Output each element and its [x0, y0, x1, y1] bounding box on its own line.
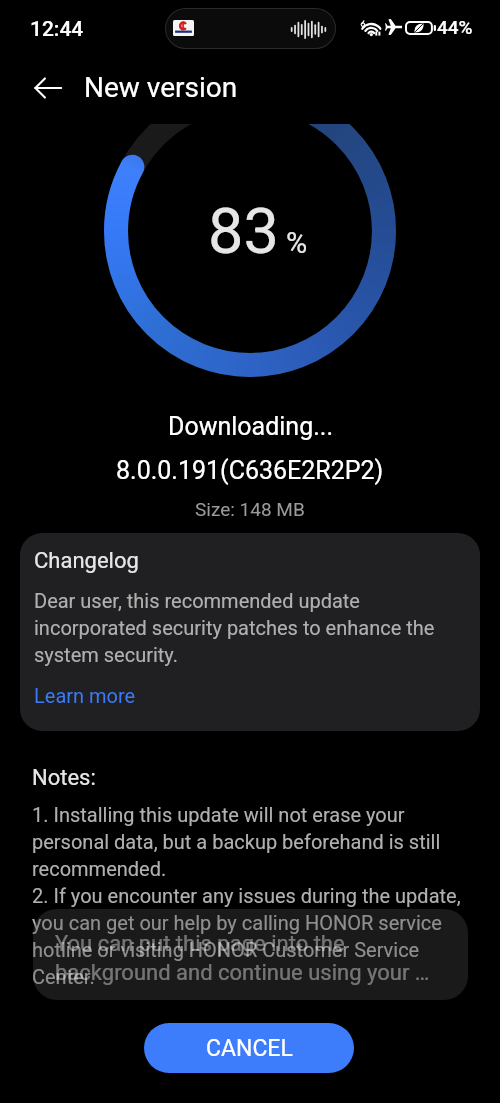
staticText: You can put this page into the backgroun…: [55, 931, 443, 985]
button[interactable]: Changelog: [20, 533, 480, 731]
button[interactable]: Back: [26, 66, 70, 110]
button[interactable]: Now playing: [165, 8, 336, 49]
staticText: Downloading...: [168, 412, 333, 441]
staticText: Size: 148 MB: [195, 498, 305, 520]
staticText: %: [286, 226, 308, 260]
staticText: CANCEL: [206, 1035, 293, 1062]
staticText: 44%: [437, 16, 473, 38]
staticText: 1. Installing this update will not erase…: [32, 803, 466, 880]
staticText: Notes:: [32, 765, 96, 791]
staticText: Dear user, this recommended update incor…: [34, 589, 454, 667]
staticText: 2. If you encounter any issues during th…: [32, 884, 466, 988]
staticText: New version: [84, 71, 238, 104]
button[interactable]: Learn more: [34, 684, 136, 707]
staticText: 83: [208, 195, 279, 269]
button[interactable]: CANCEL: [144, 1023, 354, 1073]
staticText: Changelog: [34, 548, 139, 574]
staticText: 8.0.0.191(C636E2R2P2): [116, 456, 384, 485]
staticText: 12:44: [30, 17, 84, 42]
